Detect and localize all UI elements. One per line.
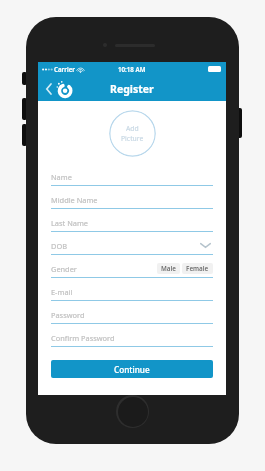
- staticText: Continue: [114, 364, 150, 375]
- staticText: Register: [110, 82, 154, 96]
- button[interactable]: Confirm Password: [51, 329, 213, 352]
- staticText: Gender: [51, 264, 77, 274]
- staticText: Female: [186, 264, 209, 273]
- staticText: Name: [51, 172, 72, 182]
- button[interactable]: Back: [41, 82, 55, 96]
- button[interactable]: Add: [109, 110, 156, 157]
- staticText: E-mail: [51, 287, 73, 297]
- button[interactable]: E-mail: [51, 283, 213, 306]
- staticText: Picture: [121, 134, 144, 143]
- staticText: Carrier: [54, 65, 75, 73]
- button[interactable]: Gender: [51, 260, 213, 283]
- button[interactable]: Female: [182, 263, 213, 274]
- button[interactable]: Continue: [51, 360, 213, 378]
- button[interactable]: Select date of birth: [198, 238, 213, 253]
- button[interactable]: Middle Name: [51, 191, 213, 214]
- staticText: Male: [161, 264, 176, 273]
- staticText: DOB: [51, 241, 67, 251]
- staticText: Middle Name: [51, 195, 98, 205]
- staticText: Password: [51, 310, 85, 320]
- button[interactable]: Last Name: [51, 214, 213, 237]
- button[interactable]: Name: [51, 168, 213, 191]
- button[interactable]: Home: [116, 395, 149, 428]
- button[interactable]: DOB: [51, 237, 213, 260]
- staticText: Add: [126, 124, 139, 133]
- staticText: 10:18 AM: [118, 65, 146, 73]
- button[interactable]: Password: [51, 306, 213, 329]
- staticText: Last Name: [51, 218, 88, 228]
- button[interactable]: Male: [157, 263, 180, 274]
- staticText: Confirm Password: [51, 333, 115, 343]
- button[interactable]: App logo: [54, 79, 73, 98]
